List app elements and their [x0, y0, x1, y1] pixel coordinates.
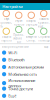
- staticText: Батарея: [26, 19, 36, 22]
- staticText: Автономный режим: [8, 64, 44, 70]
- staticText: Приложения: [13, 33, 24, 40]
- staticText: Настройки: [2, 4, 23, 9]
- staticText: Экран: [15, 19, 23, 22]
- button[interactable]: Звук: [0, 10, 12, 28]
- button[interactable]: Защита: [0, 28, 12, 42]
- button[interactable]: Память: [37, 10, 50, 28]
- button[interactable]: Батарея: [25, 12, 37, 26]
- staticText: Хранилище: [38, 21, 50, 28]
- staticText: Зарядка: [26, 23, 37, 26]
- button[interactable]: Автономный режим: [0, 63, 50, 71]
- button[interactable]: Wi-Fi: [0, 49, 50, 56]
- staticText: Использование данных: [8, 78, 35, 88]
- staticText: Справка: [38, 35, 49, 38]
- staticText: Громкость: [0, 21, 12, 28]
- staticText: Пароль: [1, 39, 11, 42]
- staticText: Аккаунты: [26, 35, 37, 38]
- staticText: Синхр.: [26, 39, 36, 42]
- staticText: Мобильная сеть: [8, 71, 37, 77]
- button[interactable]: Использование данных: [0, 78, 50, 85]
- button[interactable]: Приложения: [12, 26, 25, 44]
- button[interactable]: Ещё: [0, 92, 50, 99]
- staticText: Wi-Fi: [8, 50, 17, 55]
- button[interactable]: Bluetooth: [0, 56, 50, 63]
- staticText: Все: [17, 41, 21, 44]
- staticText: Звук: [4, 17, 9, 21]
- staticText: Защита: [2, 35, 11, 38]
- button[interactable]: Мобильная сеть: [0, 71, 50, 78]
- staticText: Беспроводные сети: [2, 45, 29, 48]
- staticText: Яркость: [14, 23, 24, 26]
- staticText: Ещё: [8, 93, 16, 98]
- staticText: Память: [39, 17, 48, 21]
- button[interactable]: Экран: [12, 12, 25, 26]
- button[interactable]: Точка доступа: [0, 85, 50, 92]
- button[interactable]: Справка: [37, 28, 50, 42]
- staticText: Помощь: [38, 39, 49, 42]
- staticText: Ещё: [44, 45, 48, 48]
- staticText: Bluetooth: [8, 57, 24, 62]
- button[interactable]: Аккаунты: [25, 28, 37, 42]
- staticText: Точка доступа: [8, 86, 33, 91]
